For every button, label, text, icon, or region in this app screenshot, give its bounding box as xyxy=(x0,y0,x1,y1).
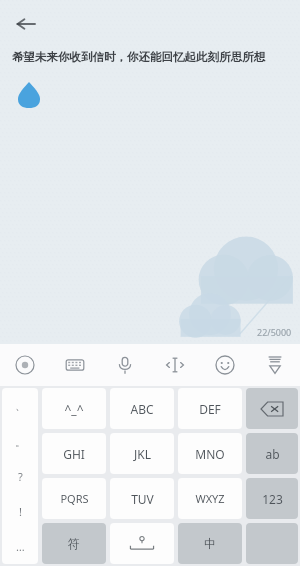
button[interactable]: Space xyxy=(110,523,174,564)
staticText: MNO xyxy=(195,446,225,462)
button[interactable]: … xyxy=(2,529,38,564)
button[interactable]: Hide keyboard xyxy=(250,344,300,386)
button[interactable]: MNO xyxy=(178,433,242,474)
button[interactable]: ABC xyxy=(110,388,174,429)
button[interactable]: ^_^ xyxy=(42,388,106,429)
staticText: ABC xyxy=(130,401,154,417)
staticText: WXYZ xyxy=(195,491,225,506)
button[interactable]: PQRS xyxy=(42,478,106,519)
button[interactable]: ab xyxy=(246,433,298,474)
staticText: PQRS xyxy=(60,491,89,506)
staticText: ^_^ xyxy=(64,401,84,417)
staticText: ! xyxy=(19,504,22,519)
button[interactable]: Backspace xyxy=(246,388,298,429)
button[interactable]: ? xyxy=(2,459,38,494)
staticText: … xyxy=(16,539,25,554)
staticText: 中 xyxy=(204,536,216,551)
staticText: TUV xyxy=(131,491,154,507)
button[interactable]: JKL xyxy=(110,433,174,474)
button[interactable]: TUV xyxy=(110,478,174,519)
button[interactable]: Keyboard layout xyxy=(50,344,100,386)
staticText: ab xyxy=(265,446,280,462)
button[interactable]: Sticker xyxy=(0,344,50,386)
button[interactable]: Emoji xyxy=(200,344,250,386)
button[interactable]: WXYZ xyxy=(178,478,242,519)
button[interactable]: 、 xyxy=(2,388,38,424)
staticText: 123 xyxy=(262,491,283,507)
button[interactable]: DEF xyxy=(178,388,242,429)
staticText: 希望未来你收到信时，你还能回忆起此刻所思所想 xyxy=(12,50,290,64)
staticText: 、 xyxy=(15,399,26,413)
button[interactable]: 符 xyxy=(42,523,106,564)
button[interactable]: GHI xyxy=(42,433,106,474)
staticText: GHI xyxy=(63,446,85,462)
button[interactable]: 123 xyxy=(246,478,298,519)
staticText: 符 xyxy=(68,536,80,551)
button[interactable]: 中 xyxy=(178,523,242,564)
staticText: DEF xyxy=(199,401,221,417)
staticText: 22/5000 xyxy=(257,326,292,338)
staticText: ? xyxy=(18,469,23,484)
button[interactable]: Cursor xyxy=(150,344,200,386)
button[interactable]: 。 xyxy=(2,424,38,459)
button[interactable]: Voice input xyxy=(100,344,150,386)
button[interactable]: Back xyxy=(8,6,44,42)
staticText: JKL xyxy=(134,446,151,462)
staticText: 。 xyxy=(15,435,26,449)
button[interactable]: ! xyxy=(2,494,38,529)
